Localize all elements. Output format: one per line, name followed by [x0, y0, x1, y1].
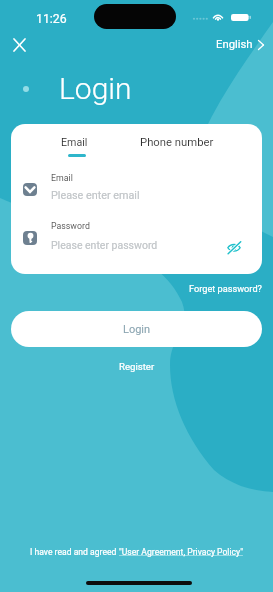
button[interactable]: Email: [40, 136, 108, 168]
staticText: Login: [123, 323, 151, 336]
button[interactable]: Register: [114, 359, 160, 374]
button[interactable]: Close: [7, 32, 32, 57]
staticText: "User Agreement, Privacy Policy": [119, 547, 243, 557]
staticText: Phone number: [140, 136, 214, 149]
staticText: Please enter password: [51, 239, 158, 251]
button[interactable]: Login: [11, 311, 262, 347]
button[interactable]: Phone number: [137, 136, 217, 160]
staticText: Register: [119, 361, 155, 372]
button[interactable]: Show password: [222, 235, 246, 259]
staticText: I have read and agreed: [30, 547, 119, 557]
button[interactable]: English: [213, 34, 267, 55]
staticText: 11:26: [36, 12, 67, 26]
staticText: English: [216, 38, 253, 51]
staticText: Forget password?: [189, 283, 262, 294]
staticText: Email: [61, 136, 88, 149]
button[interactable]: Forget password?: [185, 281, 266, 296]
staticText: Password: [51, 221, 90, 231]
staticText: Please enter email: [51, 189, 140, 202]
staticText: Login: [59, 71, 132, 106]
staticText: Email: [51, 173, 73, 183]
button[interactable]: "User Agreement, Privacy Policy": [119, 547, 243, 557]
